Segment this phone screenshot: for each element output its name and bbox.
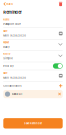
staticText: Daily (3, 45, 9, 48)
button[interactable]: Notify (3, 51, 63, 62)
staticText: Simple (3, 57, 13, 60)
button[interactable]: Name (3, 17, 63, 28)
staticText: Date (3, 72, 7, 75)
button[interactable]: End by (3, 62, 63, 70)
button[interactable]: Date (3, 28, 63, 39)
staticText: Nadia Gil (12, 93, 23, 95)
button[interactable]: Add collaborator (59, 84, 63, 88)
staticText: End by (3, 64, 13, 67)
staticText: Date (3, 30, 7, 32)
button[interactable]: Save Reminder (3, 118, 63, 128)
button[interactable]: Remove collaborator (58, 93, 61, 96)
button[interactable]: Repeat (3, 39, 63, 51)
staticText: Mon 9/28/2020 (3, 76, 26, 79)
staticText: Passport due (3, 23, 21, 26)
staticText: Reminder (3, 10, 22, 15)
staticText: Back (6, 2, 12, 5)
button[interactable]: Back (3, 1, 13, 7)
staticText: Mon 9/28/2020 (3, 34, 26, 37)
staticText: Name (3, 18, 9, 21)
staticText: Collaborators (3, 84, 21, 87)
staticText: Notify (3, 53, 10, 55)
button[interactable]: Date (3, 70, 63, 82)
staticText: Repeat (3, 41, 9, 44)
staticText: Save Reminder (24, 122, 42, 125)
button[interactable]: Delete reminder (58, 1, 63, 7)
